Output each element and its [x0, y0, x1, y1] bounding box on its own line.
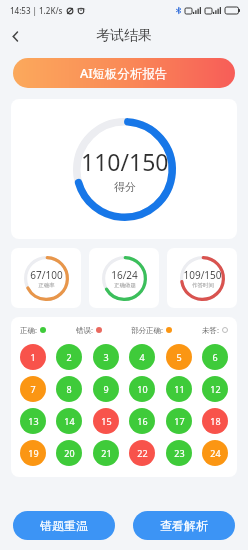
staticText: 15	[101, 415, 112, 427]
button[interactable]: 3	[93, 344, 119, 370]
staticText: 考试结果	[96, 27, 152, 45]
staticText: 1	[30, 351, 36, 363]
button[interactable]: 错题重温	[13, 511, 115, 540]
staticText: 12	[210, 383, 221, 395]
button[interactable]: 12	[202, 376, 228, 402]
button[interactable]: 16	[129, 408, 155, 434]
staticText: 部分正确:	[131, 325, 164, 335]
button[interactable]: 2	[56, 344, 82, 370]
staticText: 正确做题	[114, 282, 136, 289]
staticText: 5	[176, 351, 182, 363]
button[interactable]: 10	[129, 376, 155, 402]
staticText: 16	[137, 415, 148, 427]
button[interactable]: 4	[129, 344, 155, 370]
staticText: 未答:	[202, 325, 220, 335]
button[interactable]: 11	[166, 376, 192, 402]
staticText: 9	[103, 383, 109, 395]
staticText: 3	[103, 351, 109, 363]
button[interactable]: 5	[166, 344, 192, 370]
button[interactable]: 19	[20, 440, 46, 466]
staticText: 正确率	[38, 282, 55, 289]
staticText: 24	[210, 447, 221, 459]
staticText: 67/100	[30, 268, 63, 282]
staticText: 正确:	[20, 325, 38, 335]
staticText: 20	[64, 447, 75, 459]
button[interactable]: 22	[129, 440, 155, 466]
staticText: 得分	[114, 180, 136, 194]
staticText: 查看解析	[160, 518, 208, 533]
staticText: 17	[174, 415, 185, 427]
staticText: 10	[137, 383, 148, 395]
button[interactable]: 1	[20, 344, 46, 370]
button[interactable]: 14	[56, 408, 82, 434]
button[interactable]: Back	[0, 21, 30, 51]
button[interactable]: AI短板分析报告	[13, 58, 235, 88]
staticText: 11	[174, 383, 185, 395]
staticText: 23	[174, 447, 185, 459]
staticText: 作答时间	[192, 282, 214, 289]
button[interactable]: 查看解析	[133, 511, 235, 540]
staticText: 16/24	[111, 268, 138, 282]
staticText: 2	[66, 351, 72, 363]
button[interactable]: 15	[93, 408, 119, 434]
button[interactable]: 13	[20, 408, 46, 434]
button[interactable]: 21	[93, 440, 119, 466]
staticText: 21	[101, 447, 112, 459]
button[interactable]: 9	[93, 376, 119, 402]
staticText: 110/150	[81, 146, 169, 177]
staticText: 8	[66, 383, 72, 395]
button[interactable]: 23	[166, 440, 192, 466]
button[interactable]: 67/100	[11, 248, 81, 308]
staticText: 错题重温	[40, 518, 88, 533]
staticText: 19	[28, 447, 39, 459]
button[interactable]: 7	[20, 376, 46, 402]
button[interactable]: 24	[202, 440, 228, 466]
button[interactable]: 20	[56, 440, 82, 466]
staticText: 18	[210, 415, 221, 427]
staticText: 14	[64, 415, 75, 427]
staticText: 14:53 | 1.2K/s	[10, 5, 63, 16]
staticText: 13	[28, 415, 39, 427]
staticText: AI短板分析报告	[80, 65, 168, 82]
button[interactable]: 18	[202, 408, 228, 434]
button[interactable]: 16/24	[89, 248, 159, 308]
staticText: 6	[212, 351, 218, 363]
staticText: 109/150	[183, 268, 222, 282]
staticText: 错误:	[76, 325, 94, 335]
staticText: 22	[137, 447, 148, 459]
staticText: 4	[139, 351, 145, 363]
button[interactable]: 8	[56, 376, 82, 402]
button[interactable]: 109/150	[167, 248, 237, 308]
staticText: 7	[30, 383, 36, 395]
button[interactable]: 17	[166, 408, 192, 434]
button[interactable]: 6	[202, 344, 228, 370]
